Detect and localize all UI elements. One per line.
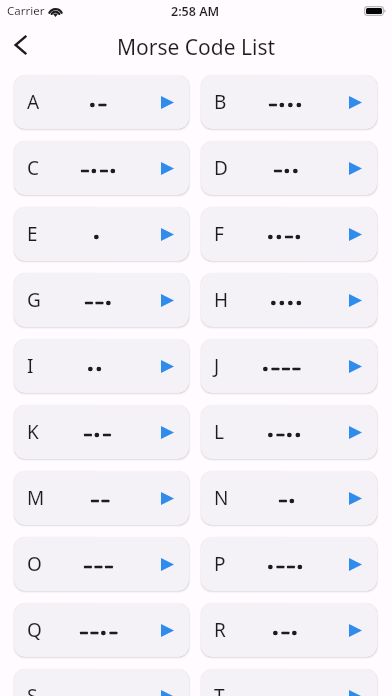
button[interactable]: Play	[155, 618, 179, 642]
button[interactable]: Play	[155, 156, 179, 180]
staticText: P	[214, 551, 226, 577]
button[interactable]: Play	[343, 222, 367, 246]
button[interactable]: J	[201, 339, 377, 393]
button[interactable]: Play	[343, 354, 367, 378]
staticText: Q	[27, 617, 42, 643]
staticText: S	[27, 683, 38, 696]
button[interactable]: Play	[155, 222, 179, 246]
staticText: I	[27, 353, 34, 379]
button[interactable]: Play	[155, 354, 179, 378]
button[interactable]: N	[201, 471, 377, 525]
button[interactable]: Play	[155, 288, 179, 312]
button[interactable]: C	[14, 141, 189, 195]
button[interactable]: Back	[0, 24, 42, 66]
staticText: Carrier	[7, 3, 45, 19]
button[interactable]: E	[14, 207, 189, 261]
button[interactable]: T	[201, 669, 377, 696]
button[interactable]: L	[201, 405, 377, 459]
button[interactable]: O	[14, 537, 189, 591]
button[interactable]: P	[201, 537, 377, 591]
button[interactable]: Q	[14, 603, 189, 657]
button[interactable]: Play	[343, 552, 367, 576]
button[interactable]: Play	[343, 684, 367, 696]
staticText: T	[214, 683, 225, 696]
button[interactable]: Play	[343, 288, 367, 312]
button[interactable]: I	[14, 339, 189, 393]
staticText: H	[214, 287, 229, 313]
button[interactable]: M	[14, 471, 189, 525]
staticText: B	[214, 89, 227, 115]
staticText: K	[27, 419, 39, 445]
button[interactable]: Play	[155, 552, 179, 576]
button[interactable]: D	[201, 141, 377, 195]
button[interactable]: G	[14, 273, 189, 327]
staticText: L	[214, 419, 224, 445]
staticText: G	[27, 287, 41, 313]
staticText: F	[214, 221, 224, 247]
staticText: E	[27, 221, 38, 247]
button[interactable]: B	[201, 75, 377, 129]
button[interactable]: Play	[343, 618, 367, 642]
button[interactable]: Play	[343, 486, 367, 510]
button[interactable]: Play	[155, 420, 179, 444]
button[interactable]: Play	[343, 420, 367, 444]
button[interactable]: Play	[155, 90, 179, 114]
staticText: 2:58 AM	[171, 3, 220, 20]
staticText: J	[214, 353, 220, 379]
staticText: D	[214, 155, 228, 181]
staticText: Morse Code List	[117, 33, 276, 62]
button[interactable]: Play	[155, 486, 179, 510]
staticText: O	[27, 551, 42, 577]
button[interactable]: Play	[155, 684, 179, 696]
button[interactable]: Play	[343, 90, 367, 114]
staticText: N	[214, 485, 229, 511]
staticText: R	[214, 617, 226, 643]
button[interactable]: R	[201, 603, 377, 657]
button[interactable]: S	[14, 669, 189, 696]
staticText: A	[27, 89, 40, 115]
button[interactable]: F	[201, 207, 377, 261]
staticText: M	[27, 485, 45, 511]
button[interactable]: Play	[343, 156, 367, 180]
staticText: C	[27, 155, 40, 181]
button[interactable]: K	[14, 405, 189, 459]
button[interactable]: A	[14, 75, 189, 129]
button[interactable]: H	[201, 273, 377, 327]
